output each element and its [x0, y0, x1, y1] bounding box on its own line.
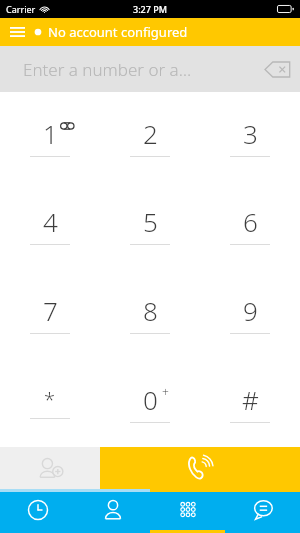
staticText: 3:27 PM [133, 3, 167, 15]
button[interactable]: * [0, 358, 100, 447]
button[interactable]: 7 [0, 269, 100, 358]
button[interactable]: Recent calls [0, 489, 75, 533]
button[interactable]: Contacts [75, 489, 150, 533]
staticText: * [44, 386, 56, 413]
button[interactable]: 1 [0, 92, 100, 180]
button[interactable]: # [200, 358, 300, 447]
button[interactable]: Call [100, 447, 300, 489]
button[interactable]: Add contact [0, 447, 100, 489]
staticText: 8 [143, 293, 158, 328]
staticText: No account configured [48, 23, 188, 41]
button[interactable]: 8 [100, 269, 200, 358]
button[interactable]: 3 [200, 92, 300, 180]
staticText: 6 [243, 204, 258, 239]
button[interactable]: Backspace [256, 46, 300, 92]
button[interactable]: 6 [200, 180, 300, 269]
staticText: 1 [43, 116, 58, 151]
staticText: # [242, 382, 259, 417]
button[interactable]: 4 [0, 180, 100, 269]
staticText: Carrier [6, 3, 36, 15]
staticText: 0 [143, 382, 158, 417]
staticText: + [162, 384, 169, 400]
staticText: 7 [43, 293, 58, 328]
button[interactable]: 2 [100, 92, 200, 180]
button[interactable]: Open navigation menu [0, 18, 34, 46]
staticText: 9 [243, 293, 258, 328]
button[interactable]: 5 [100, 180, 200, 269]
button[interactable]: Keypad [150, 489, 225, 533]
staticText: 4 [43, 204, 58, 239]
button[interactable]: Messages [225, 489, 300, 533]
button[interactable]: 0 [100, 358, 200, 447]
staticText: 2 [143, 116, 158, 151]
button[interactable]: 9 [200, 269, 300, 358]
staticText: 5 [143, 204, 158, 239]
staticText: Enter a number or a… [23, 58, 192, 81]
staticText: 3 [243, 116, 258, 151]
button[interactable]: Enter a number or a… [0, 46, 300, 92]
